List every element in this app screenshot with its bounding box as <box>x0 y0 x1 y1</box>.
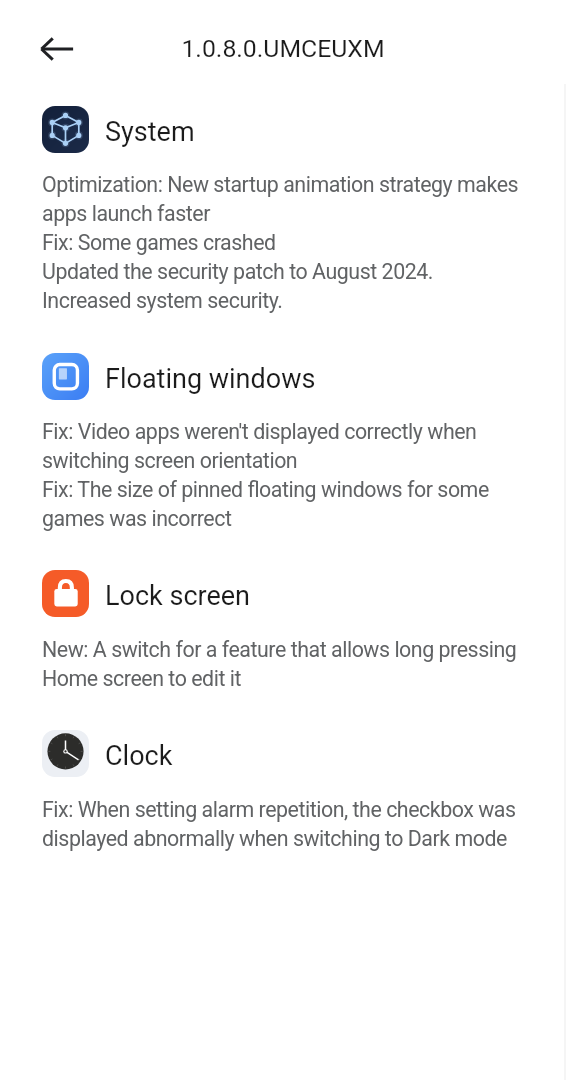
button[interactable]: Back <box>33 28 75 70</box>
staticText: Lock screen <box>105 580 250 612</box>
staticText: New: A switch for a feature that allows … <box>42 637 517 691</box>
staticText: Fix: When setting alarm repetition, the … <box>42 797 516 851</box>
staticText: Clock <box>105 740 173 772</box>
staticText: Optimization: New startup animation stra… <box>42 172 519 313</box>
staticText: Floating windows <box>105 363 316 395</box>
staticText: System <box>105 116 195 148</box>
staticText: 1.0.8.0.UMCEUXM <box>0 34 566 63</box>
staticText: Fix: Video apps weren't displayed correc… <box>42 419 489 531</box>
